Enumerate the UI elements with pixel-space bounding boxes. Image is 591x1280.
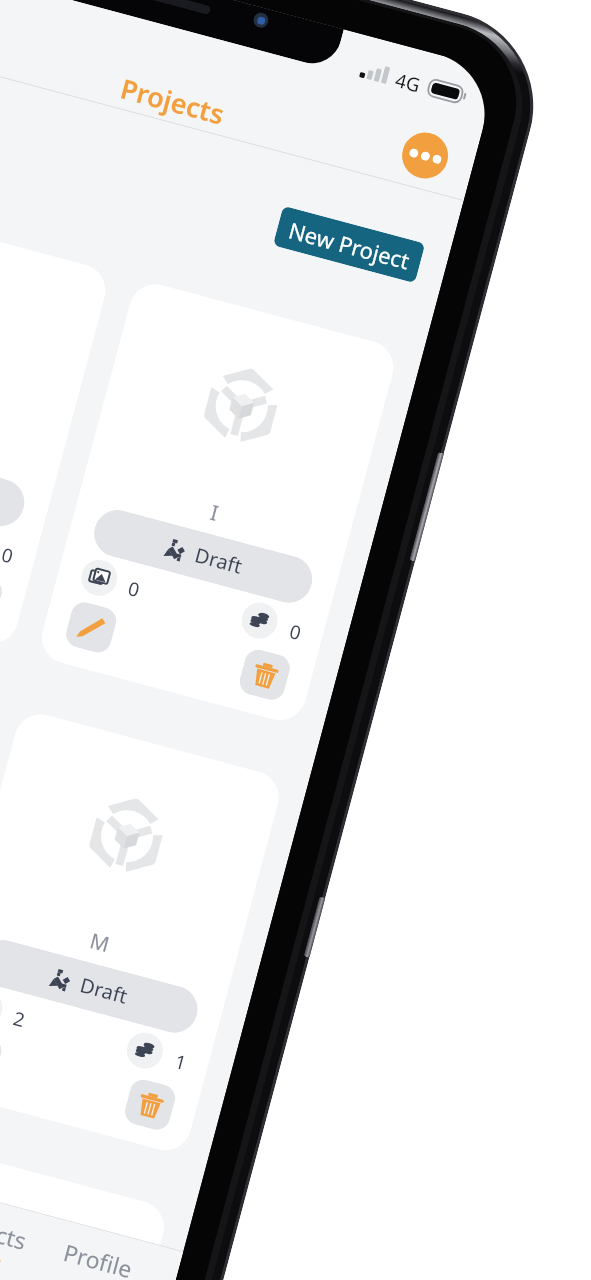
staticText: 0 (126, 575, 143, 601)
button[interactable]: M (0, 708, 285, 1156)
staticText: New Project (286, 215, 413, 276)
button[interactable]: Delete project (0, 570, 5, 626)
button[interactable]: Edit project (63, 599, 119, 655)
staticText: Projects (0, 1204, 31, 1256)
button[interactable]: Profile (31, 1216, 164, 1280)
button[interactable]: New Project (273, 206, 425, 283)
staticText: M (87, 926, 113, 957)
button[interactable]: T (0, 1138, 170, 1280)
staticText: Draft (77, 971, 131, 1010)
button[interactable]: I (36, 278, 399, 726)
button[interactable]: Edit project (0, 1029, 5, 1085)
staticText: 2 (11, 1005, 28, 1031)
button[interactable]: Delete project (122, 1077, 178, 1133)
staticText: 1 (172, 1048, 189, 1074)
button[interactable]: Delete project (237, 647, 293, 703)
button[interactable]: P (0, 201, 112, 649)
button[interactable]: Projects (0, 1186, 50, 1278)
staticText: 0 (0, 541, 16, 567)
staticText: Projects (117, 70, 229, 133)
staticText: Profile (60, 1236, 136, 1280)
button[interactable]: More options (397, 127, 453, 184)
staticText: 0 (287, 618, 304, 644)
staticText: 4G (393, 67, 423, 94)
staticText: Draft (192, 541, 245, 580)
staticText: I (208, 498, 222, 525)
